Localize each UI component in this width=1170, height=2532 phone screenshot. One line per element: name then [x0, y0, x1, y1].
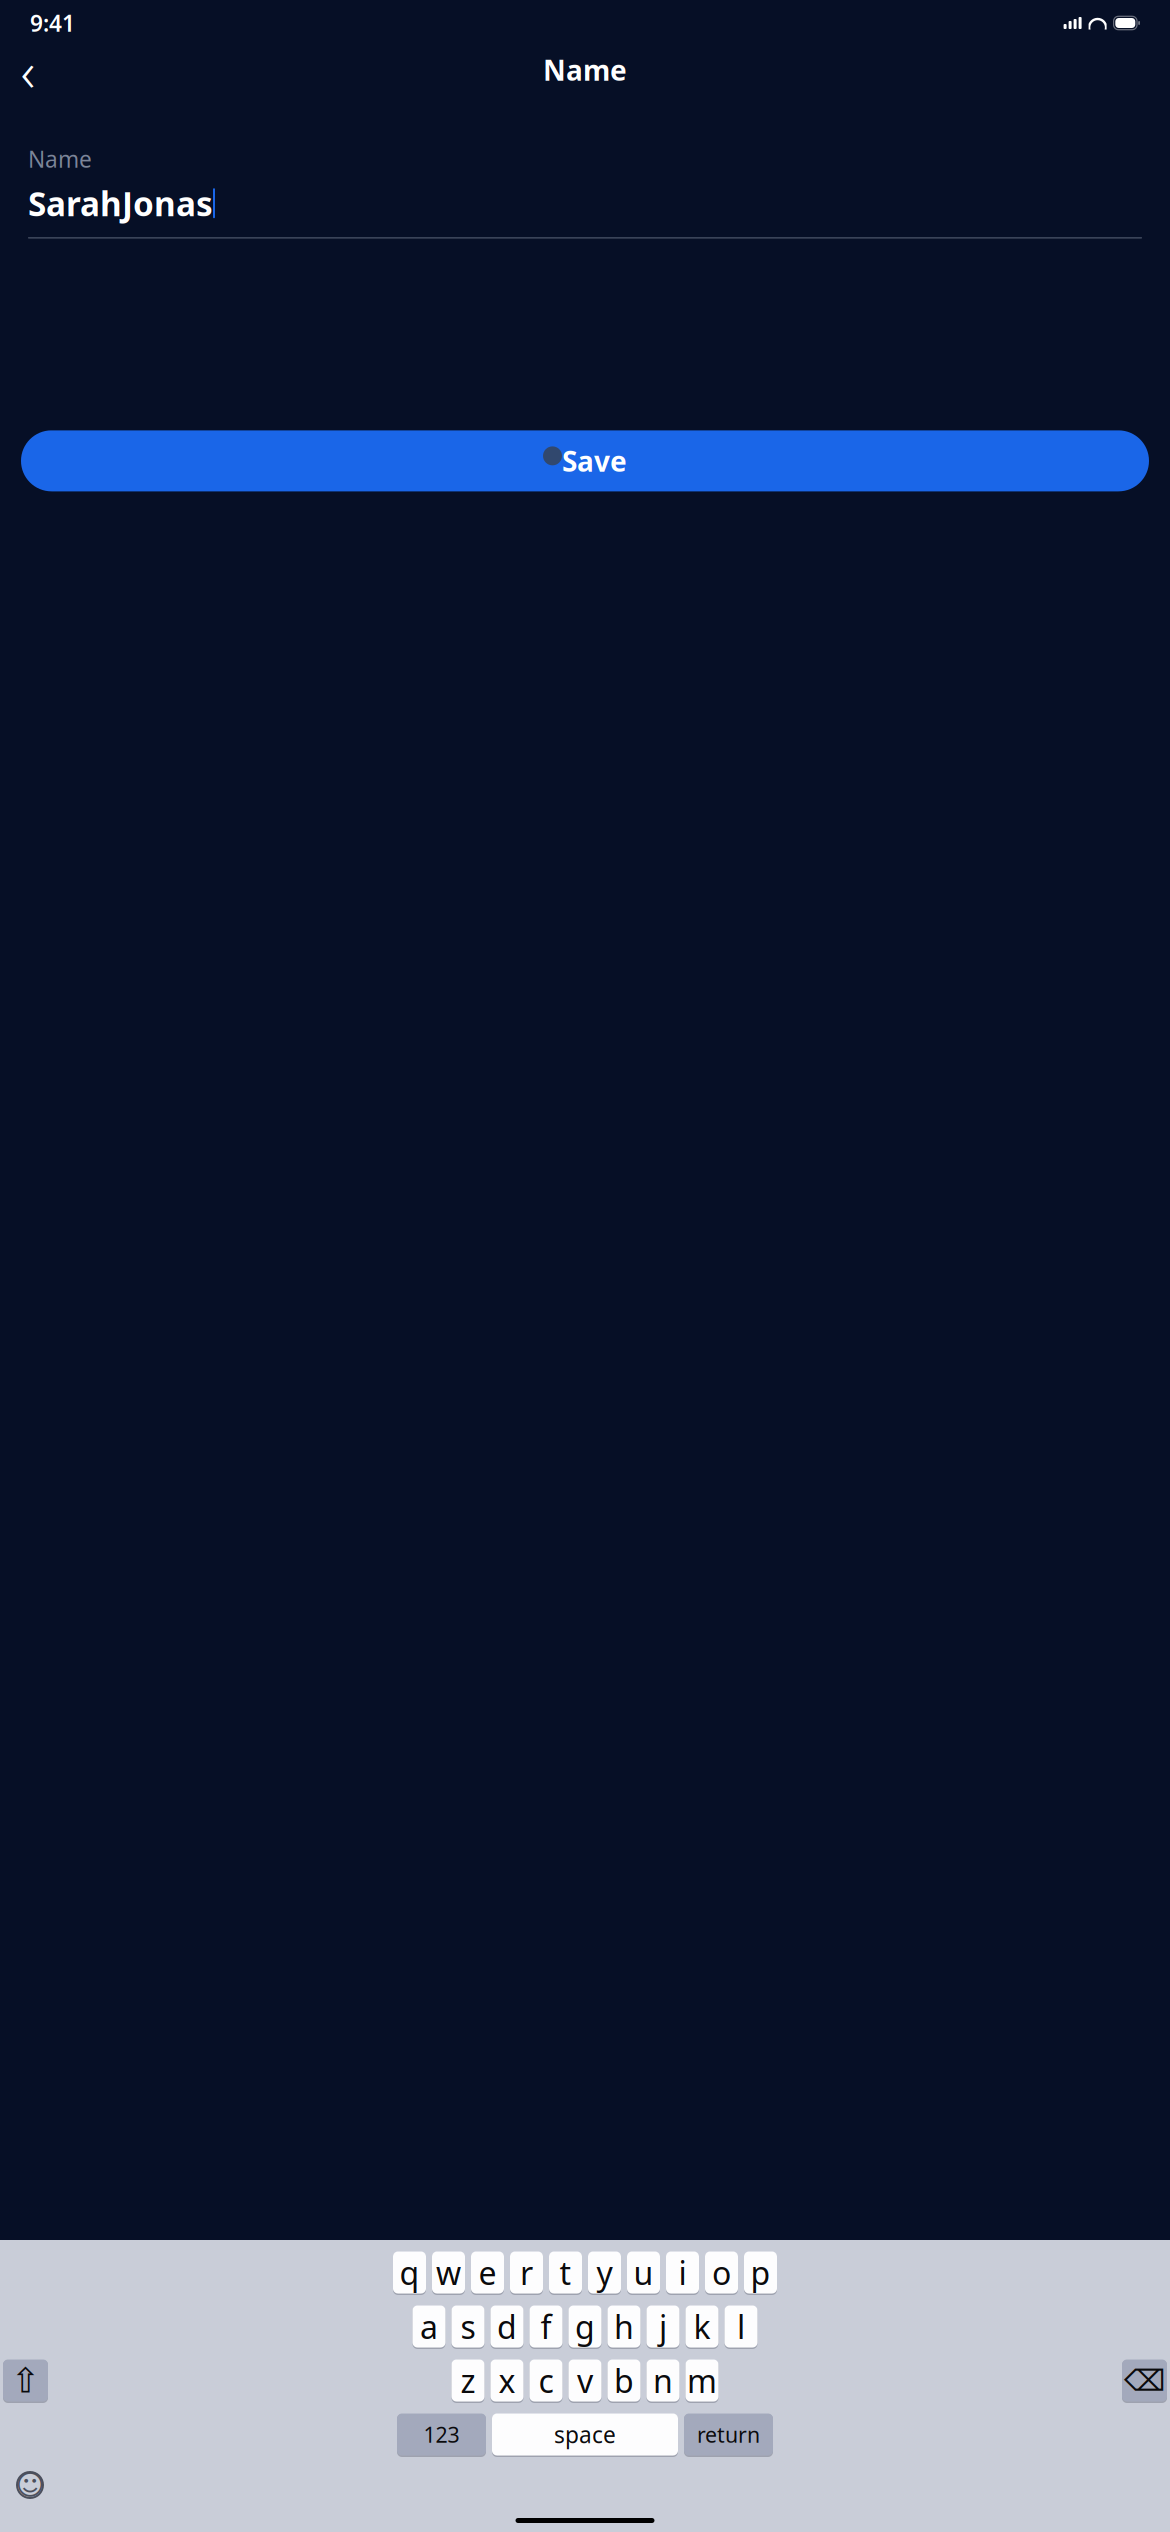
- staticText: Save: [562, 442, 627, 479]
- staticText: z: [460, 2359, 475, 2402]
- staticText: a: [420, 2305, 438, 2348]
- button[interactable]: w: [432, 2250, 465, 2295]
- staticText: e: [478, 2251, 496, 2294]
- button[interactable]: r: [510, 2250, 543, 2295]
- button[interactable]: n: [646, 2358, 679, 2403]
- staticText: p: [750, 2251, 770, 2294]
- staticText: g: [575, 2305, 595, 2348]
- button[interactable]: 123: [397, 2412, 486, 2457]
- button[interactable]: Shift: [3, 2358, 48, 2403]
- staticText: u: [633, 2251, 653, 2294]
- staticText: j: [659, 2305, 667, 2348]
- staticText: ⇧: [11, 2361, 40, 2400]
- button[interactable]: v: [568, 2358, 601, 2403]
- staticText: s: [460, 2305, 475, 2348]
- button[interactable]: x: [490, 2358, 523, 2403]
- staticText: w: [436, 2251, 461, 2294]
- button[interactable]: s: [451, 2304, 484, 2349]
- staticText: t: [559, 2251, 571, 2294]
- staticText: ☺: [15, 2469, 44, 2501]
- button[interactable]: g: [568, 2304, 601, 2349]
- button[interactable]: f: [529, 2304, 562, 2349]
- staticText: space: [554, 2419, 616, 2449]
- staticText: i: [678, 2251, 686, 2294]
- staticText: return: [697, 2420, 760, 2449]
- staticText: c: [538, 2359, 553, 2402]
- button[interactable]: Emoji keyboard: [8, 2463, 52, 2507]
- staticText: SarahJonas: [28, 181, 213, 225]
- button[interactable]: Back: [6, 48, 50, 92]
- staticText: v: [577, 2359, 593, 2402]
- staticText: n: [653, 2359, 673, 2402]
- button[interactable]: m: [685, 2358, 718, 2403]
- staticText: f: [540, 2305, 551, 2348]
- button[interactable]: Save: [0, 430, 1170, 491]
- button[interactable]: q: [393, 2250, 426, 2295]
- button[interactable]: k: [685, 2304, 718, 2349]
- button[interactable]: y: [588, 2250, 621, 2295]
- button[interactable]: t: [549, 2250, 582, 2295]
- staticText: x: [498, 2359, 515, 2402]
- button[interactable]: d: [490, 2304, 523, 2349]
- staticText: y: [596, 2251, 612, 2294]
- staticText: r: [520, 2251, 533, 2294]
- button[interactable]: i: [666, 2250, 699, 2295]
- button[interactable]: l: [724, 2304, 757, 2349]
- button[interactable]: j: [646, 2304, 679, 2349]
- staticText: o: [712, 2251, 731, 2294]
- staticText: h: [614, 2305, 634, 2348]
- staticText: 123: [423, 2420, 459, 2449]
- staticText: l: [737, 2305, 745, 2348]
- staticText: q: [399, 2251, 419, 2294]
- staticText: m: [687, 2359, 717, 2402]
- button[interactable]: c: [529, 2358, 562, 2403]
- staticText: Name: [28, 144, 92, 174]
- staticText: ⌫: [1124, 2364, 1165, 2397]
- staticText: Name: [543, 51, 627, 89]
- button[interactable]: p: [744, 2250, 777, 2295]
- staticText: k: [693, 2305, 710, 2348]
- button[interactable]: e: [471, 2250, 504, 2295]
- button[interactable]: return: [684, 2412, 773, 2457]
- staticText: b: [614, 2359, 634, 2402]
- button[interactable]: b: [607, 2358, 640, 2403]
- button[interactable]: o: [705, 2250, 738, 2295]
- button[interactable]: h: [607, 2304, 640, 2349]
- staticText: d: [497, 2305, 517, 2348]
- staticText: ‹: [20, 33, 35, 107]
- staticText: 9:41: [30, 8, 75, 38]
- button[interactable]: Delete: [1122, 2358, 1167, 2403]
- button[interactable]: a: [412, 2304, 445, 2349]
- button[interactable]: space: [492, 2412, 678, 2457]
- button[interactable]: u: [627, 2250, 660, 2295]
- button[interactable]: z: [451, 2358, 484, 2403]
